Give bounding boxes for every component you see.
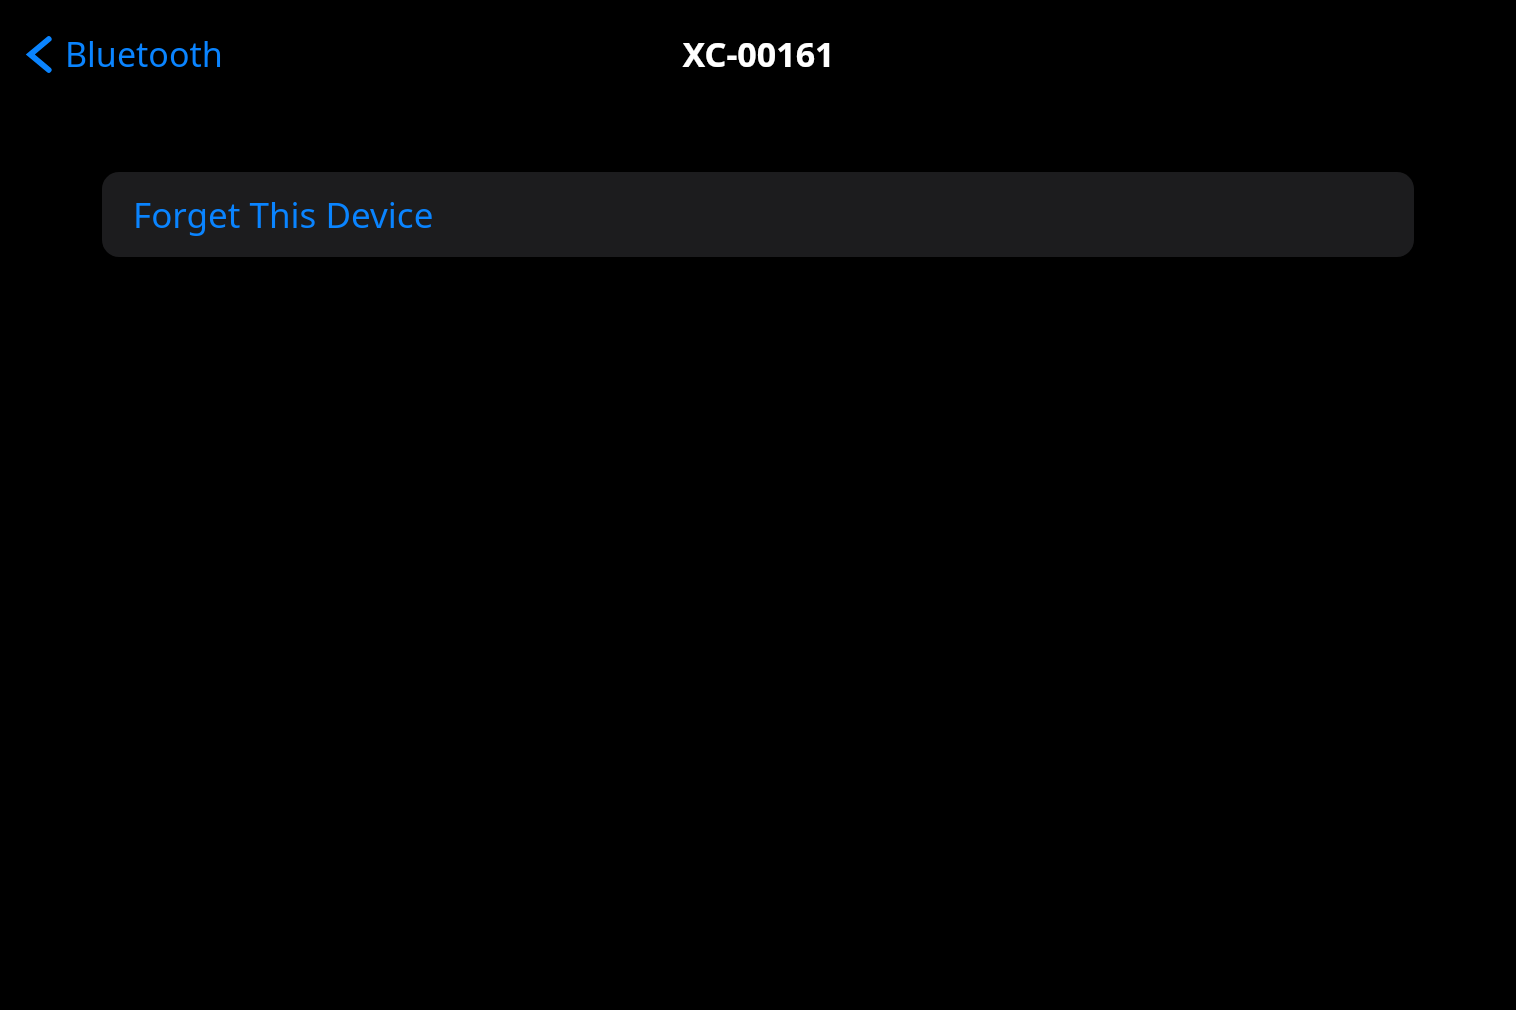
staticText: Bluetooth — [65, 31, 223, 77]
staticText: Forget This Device — [133, 191, 434, 239]
button[interactable]: Back to Bluetooth — [8, 23, 248, 85]
staticText: XC-00161 — [682, 31, 835, 77]
button[interactable]: Forget This Device — [102, 172, 1414, 257]
